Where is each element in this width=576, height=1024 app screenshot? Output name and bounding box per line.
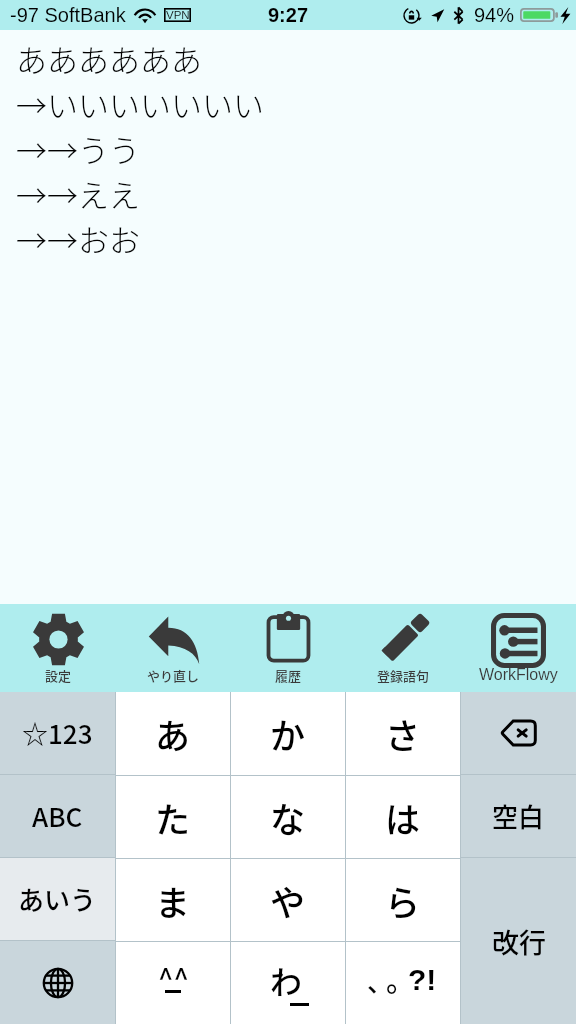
staticText: あいう <box>18 880 97 918</box>
staticText: あ <box>155 708 191 759</box>
staticText: 改行 <box>492 922 546 961</box>
staticText: ま <box>155 875 191 926</box>
button[interactable]: Globe <box>0 941 115 1024</box>
staticText: さ <box>385 708 421 759</box>
button[interactable]: は <box>346 776 460 858</box>
staticText: 登録語句 <box>377 666 430 685</box>
staticText: →→ええ <box>16 171 140 216</box>
button[interactable]: や <box>231 859 345 941</box>
button[interactable]: あ <box>116 692 230 775</box>
staticText: ?! <box>408 963 437 997</box>
staticText: ら <box>385 875 421 926</box>
button[interactable]: Settings <box>0 604 116 692</box>
staticText: やり直し <box>147 666 200 685</box>
staticText: →→おお <box>16 216 140 261</box>
button[interactable]: あいう <box>0 858 115 940</box>
button[interactable]: 改行 <box>461 858 576 1024</box>
staticText: ああああああ <box>16 36 202 81</box>
staticText: VPN <box>166 9 190 22</box>
button[interactable]: Undo <box>116 604 231 692</box>
staticText: →いいいいいいい <box>16 81 264 126</box>
button[interactable]: ま <box>116 859 230 941</box>
staticText: や <box>270 875 306 926</box>
staticText: か <box>270 708 306 759</box>
staticText: 9:27 <box>268 4 309 26</box>
staticText: WorkFlowy <box>479 666 558 684</box>
staticText: は <box>385 792 421 843</box>
staticText: 設定 <box>45 666 72 685</box>
staticText: 。 <box>386 958 416 1000</box>
staticText: ^^ <box>158 957 189 996</box>
button[interactable]: ABC <box>0 775 115 857</box>
button[interactable]: ら <box>346 859 460 941</box>
staticText: な <box>270 792 306 843</box>
button[interactable]: な <box>231 776 345 858</box>
staticText: 空白 <box>492 797 545 835</box>
staticText: 94% <box>474 4 515 26</box>
button[interactable]: 、 <box>346 942 460 1024</box>
staticText: ABC <box>32 797 83 835</box>
staticText: た <box>155 792 191 843</box>
staticText: 、 <box>367 962 394 1000</box>
button[interactable]: さ <box>346 692 460 775</box>
button[interactable]: か <box>231 692 345 775</box>
button[interactable]: History <box>231 604 346 692</box>
button[interactable]: Delete <box>461 692 576 774</box>
button[interactable]: た <box>116 776 230 858</box>
button[interactable]: 空白 <box>461 775 576 857</box>
button[interactable]: ^^ <box>116 942 230 1024</box>
staticText: ☆123 <box>22 714 93 752</box>
staticText: -97 SoftBank <box>10 4 126 26</box>
button[interactable]: わ <box>231 942 345 1024</box>
staticText: →→うう <box>16 126 140 171</box>
staticText: わ <box>270 957 303 1003</box>
button[interactable]: WorkFlowy <box>461 604 576 692</box>
staticText: 履歴 <box>275 666 302 685</box>
button[interactable]: ☆123 <box>0 692 115 774</box>
button[interactable]: Registered phrases <box>346 604 461 692</box>
